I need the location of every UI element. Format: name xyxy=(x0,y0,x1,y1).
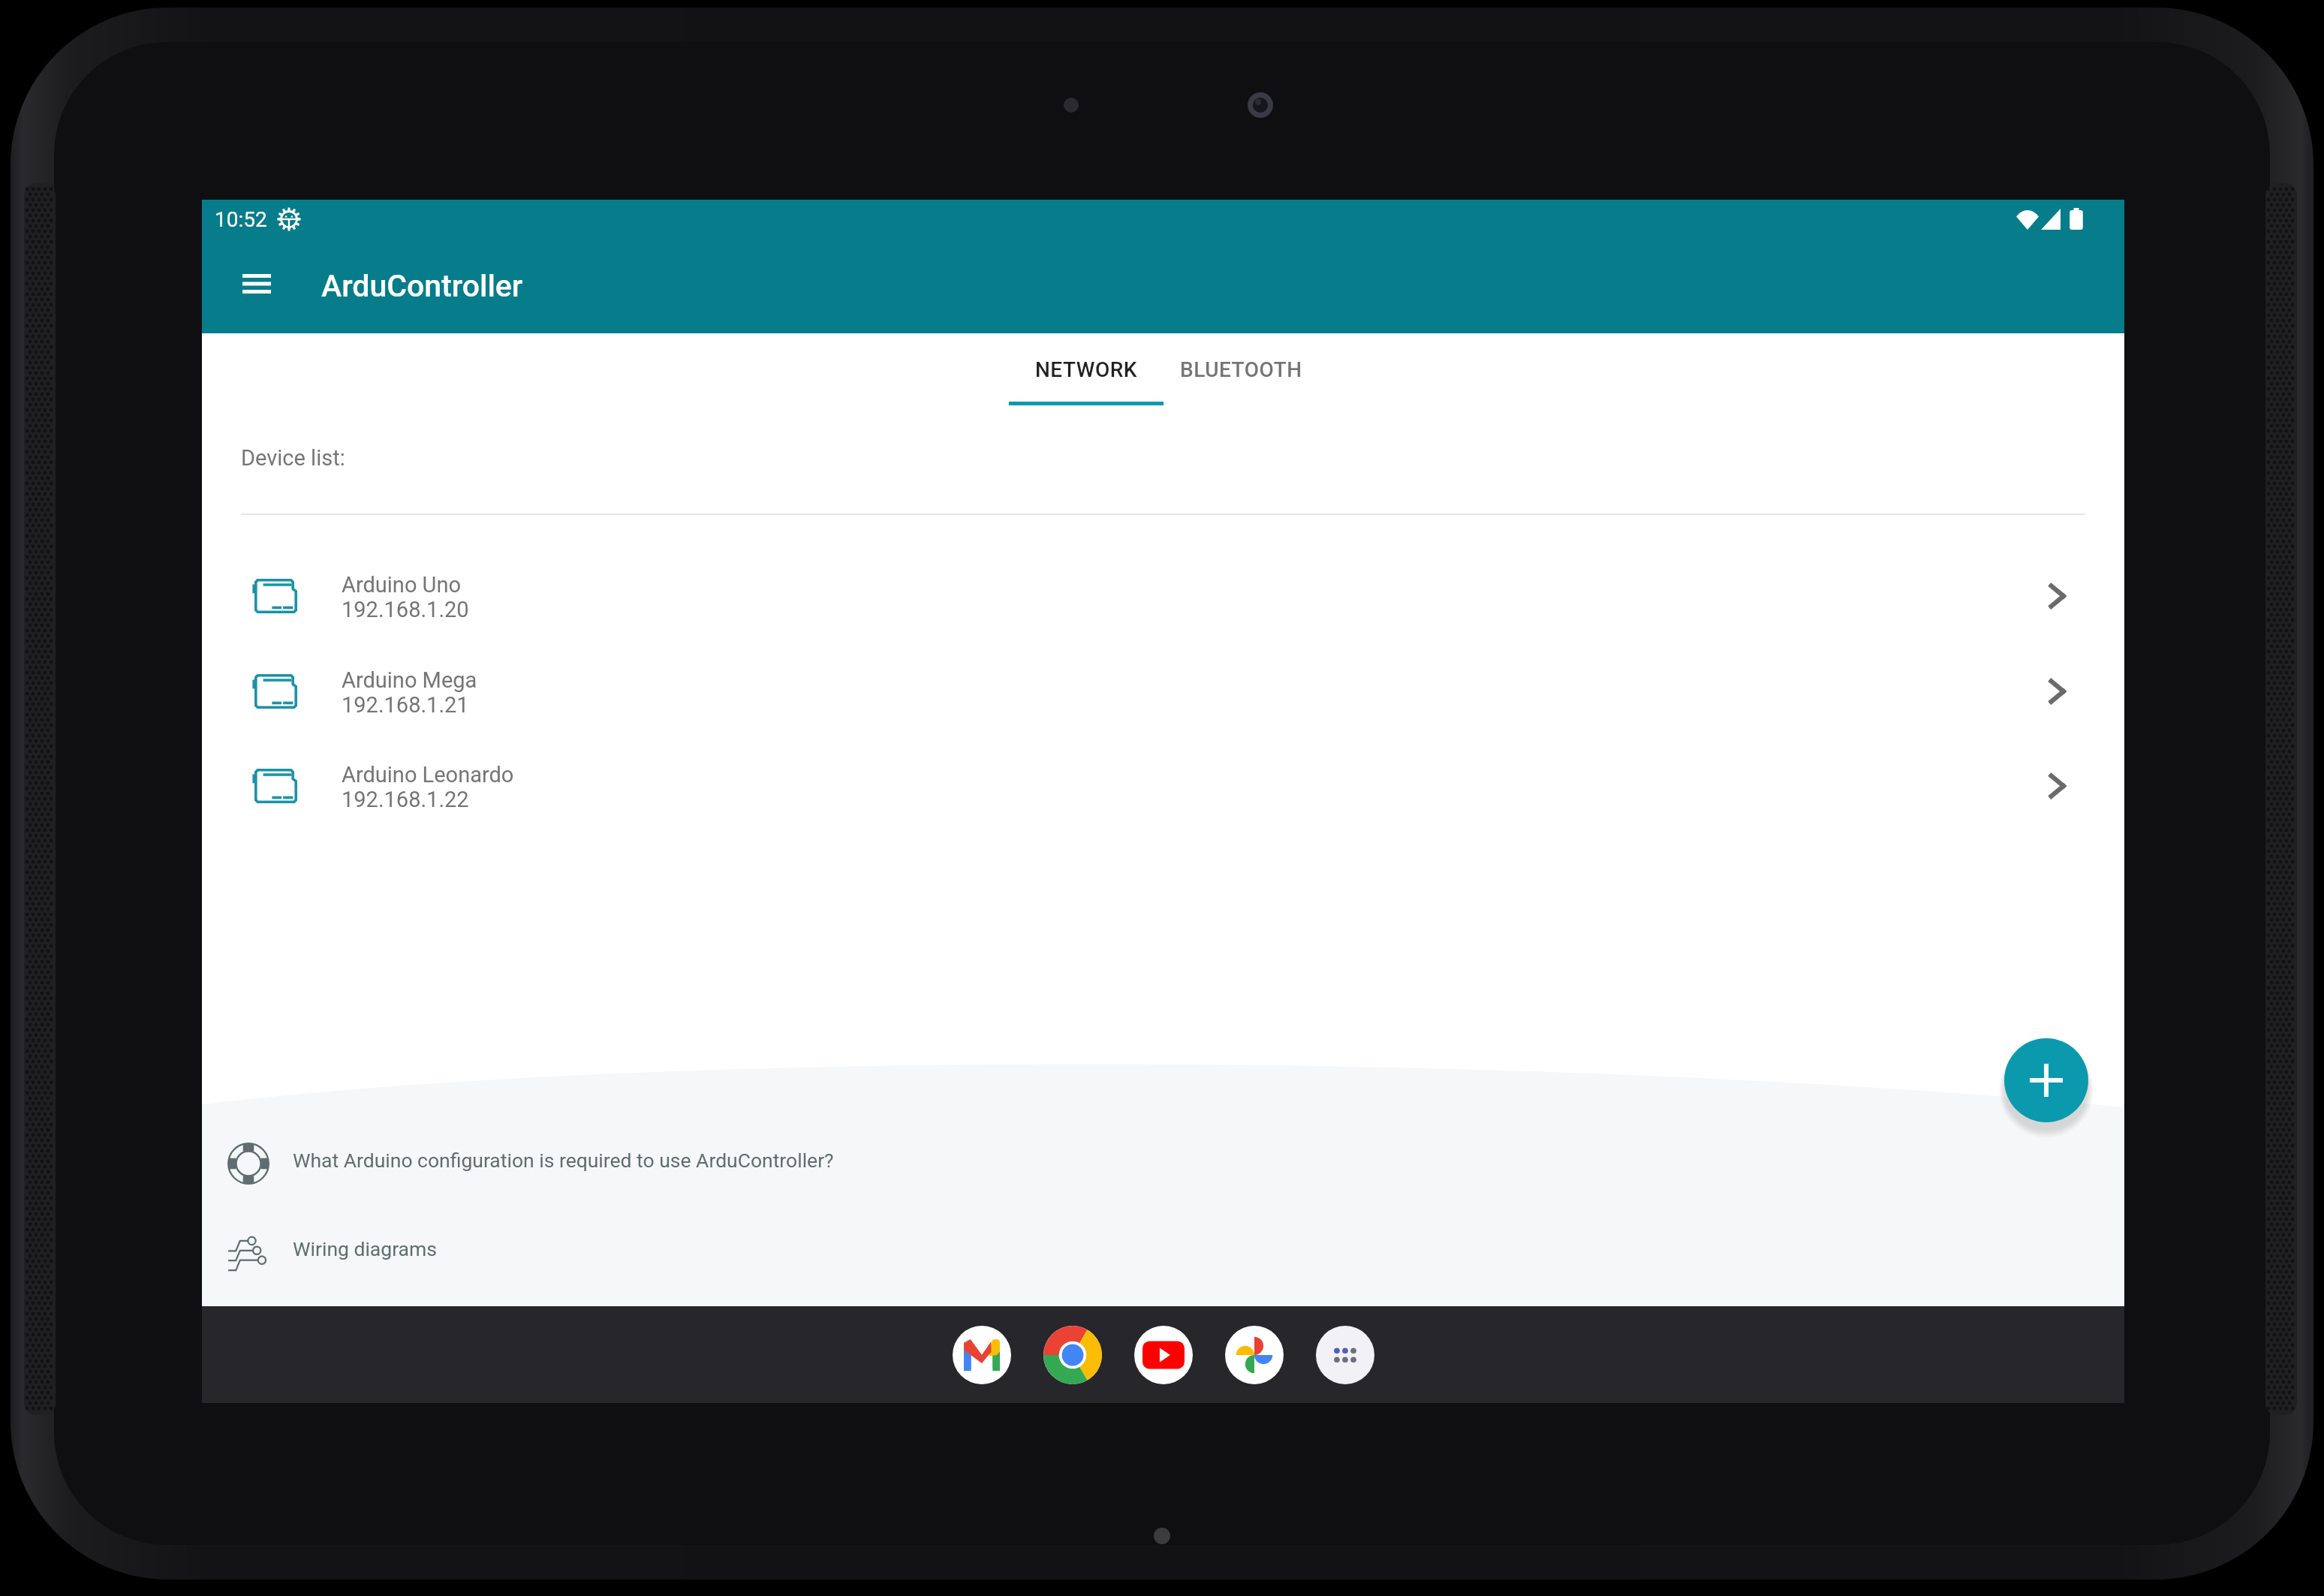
button[interactable]: Wiring diagrams xyxy=(202,1212,2124,1293)
button[interactable]: What Arduino configuration is required t… xyxy=(202,1123,2124,1204)
button[interactable]: All apps xyxy=(1316,1326,1374,1384)
button[interactable]: Arduino Mega xyxy=(202,643,2124,739)
staticText: Arduino Mega xyxy=(342,667,477,693)
button[interactable]: BLUETOOTH xyxy=(1164,333,1318,431)
button[interactable]: Gmail xyxy=(953,1326,1011,1384)
button[interactable]: Arduino Leonardo xyxy=(202,738,2124,834)
staticText: What Arduino configuration is required t… xyxy=(293,1149,834,1172)
staticText: Wiring diagrams xyxy=(293,1237,437,1260)
staticText: 10:52 xyxy=(215,207,267,232)
staticText: 192.168.1.20 xyxy=(342,597,469,622)
button[interactable]: Chrome xyxy=(1043,1326,1102,1384)
staticText: Arduino Leonardo xyxy=(342,762,514,787)
staticText: 192.168.1.22 xyxy=(342,787,469,812)
staticText: NETWORK xyxy=(1035,357,1137,382)
staticText: 192.168.1.21 xyxy=(342,692,469,718)
staticText: Arduino Uno xyxy=(342,572,461,598)
button[interactable]: Photos xyxy=(1225,1326,1284,1384)
staticText: ArduController xyxy=(321,268,523,304)
button[interactable]: Open navigation drawer xyxy=(208,259,277,333)
button[interactable]: Add device xyxy=(2004,1038,2088,1122)
staticText: Device list: xyxy=(241,445,345,471)
button[interactable]: NETWORK xyxy=(1009,333,1164,431)
button[interactable]: Arduino Uno xyxy=(202,548,2124,644)
button[interactable]: YouTube xyxy=(1134,1326,1193,1384)
staticText: BLUETOOTH xyxy=(1180,357,1302,382)
